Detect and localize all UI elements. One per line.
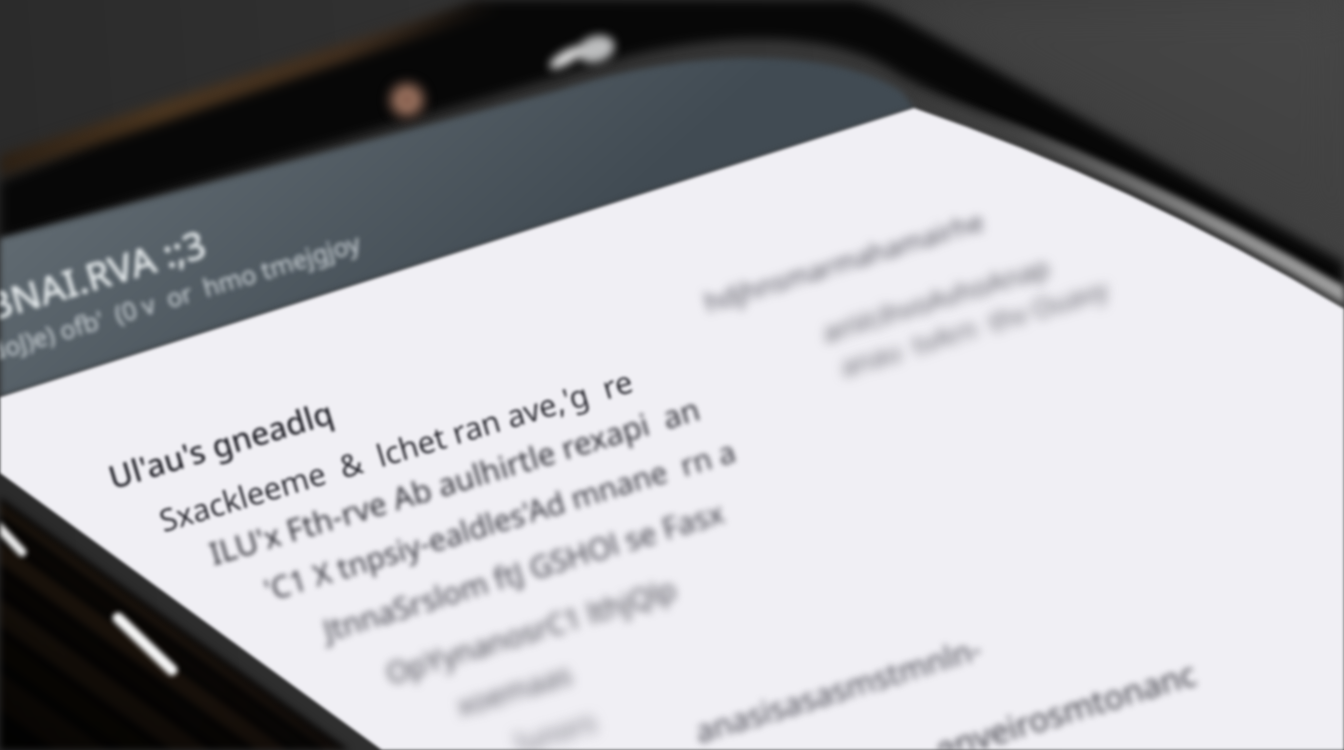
button[interactable]: List item ${i + 1} [225, 530, 980, 572]
button[interactable]: List item ${i + 1} [470, 690, 980, 732]
button[interactable]: List item ${i + 1} [60, 410, 980, 452]
button[interactable]: List item ${i + 1} [415, 652, 980, 694]
button[interactable]: List item ${i + 1} [285, 570, 980, 612]
button[interactable]: Top app bar [0, 150, 850, 380]
other: Volume buttons [0, 0, 1344, 750]
other: Status bar [0, 0, 1344, 750]
button[interactable]: List item ${i + 1} [170, 492, 980, 534]
button[interactable]: List item ${i + 1} [345, 612, 980, 654]
button[interactable]: List item ${i + 1} [120, 452, 980, 494]
